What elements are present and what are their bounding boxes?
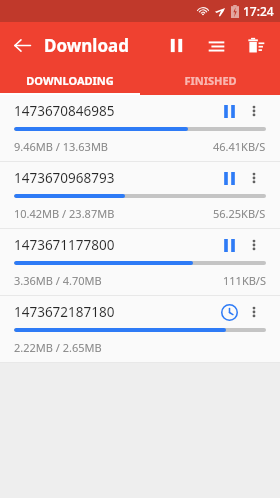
button[interactable]: Waiting <box>216 299 242 325</box>
button[interactable]: Pause all <box>156 25 196 65</box>
staticText: Download <box>44 34 129 57</box>
staticText: 1473670968793 <box>14 169 115 187</box>
button[interactable]: Delete <box>236 25 276 65</box>
button[interactable]: Pause <box>216 98 242 124</box>
button[interactable]: Sort <box>196 25 236 65</box>
staticText: 46.41KB/S <box>213 139 266 154</box>
button[interactable]: FINISHED <box>140 68 280 93</box>
staticText: 10.42MB / 23.87MB <box>14 206 115 221</box>
button[interactable]: Pause <box>216 232 242 258</box>
button[interactable]: Pause <box>216 165 242 191</box>
staticText: 1473670846985 <box>14 102 115 120</box>
staticText: 1473672187180 <box>14 303 115 321</box>
staticText: FINISHED <box>184 73 237 88</box>
staticText: 17:24 <box>243 3 274 19</box>
button[interactable]: 1473671177800 <box>0 229 280 295</box>
staticText: 2.22MB / 2.65MB <box>14 340 102 355</box>
button[interactable]: 1473670968793 <box>0 162 280 228</box>
button[interactable]: More options <box>242 300 266 324</box>
button[interactable]: DOWNLOADING <box>0 68 140 93</box>
staticText: 9.46MB / 13.63MB <box>14 139 109 154</box>
button[interactable]: 1473670846985 <box>0 95 280 161</box>
button[interactable]: More options <box>242 99 266 123</box>
staticText: 1473671177800 <box>14 236 115 254</box>
button[interactable]: More options <box>242 233 266 257</box>
staticText: 3.36MB / 4.70MB <box>14 273 102 288</box>
button[interactable]: 1473672187180 <box>0 296 280 362</box>
button[interactable]: Back <box>0 23 44 67</box>
staticText: DOWNLOADING <box>26 73 114 88</box>
button[interactable]: More options <box>242 166 266 190</box>
staticText: 111KB/S <box>223 273 266 288</box>
staticText: 56.25KB/S <box>213 206 266 221</box>
